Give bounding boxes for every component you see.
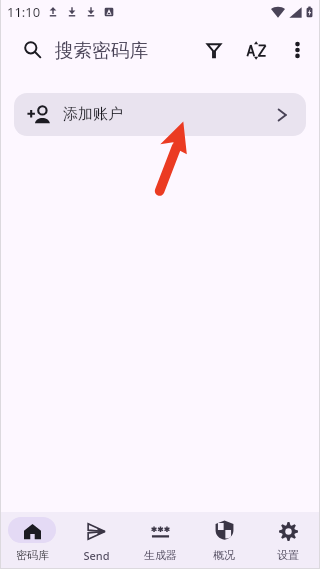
button[interactable]: 生成器 (128, 512, 192, 562)
staticText: 密码库 (16, 548, 49, 562)
staticText: 生成器 (144, 548, 177, 562)
staticText: 设置 (277, 548, 299, 562)
button[interactable]: Search (10, 26, 54, 70)
staticText: 11:10 (7, 3, 41, 21)
button[interactable]: 添加账户 (14, 93, 306, 136)
staticText: 添加账户 (63, 105, 123, 124)
staticText: 搜索密码库 (55, 39, 148, 62)
staticText: Send (83, 548, 110, 563)
button[interactable]: More options (277, 30, 317, 70)
staticText: 概况 (213, 548, 235, 562)
button[interactable]: 密码库 (0, 512, 64, 562)
button[interactable]: Sort A to Z (235, 29, 277, 71)
button[interactable]: 设置 (256, 512, 320, 562)
button[interactable]: Send (64, 512, 128, 563)
button[interactable]: 概况 (192, 512, 256, 562)
button[interactable]: Filter (193, 29, 235, 71)
